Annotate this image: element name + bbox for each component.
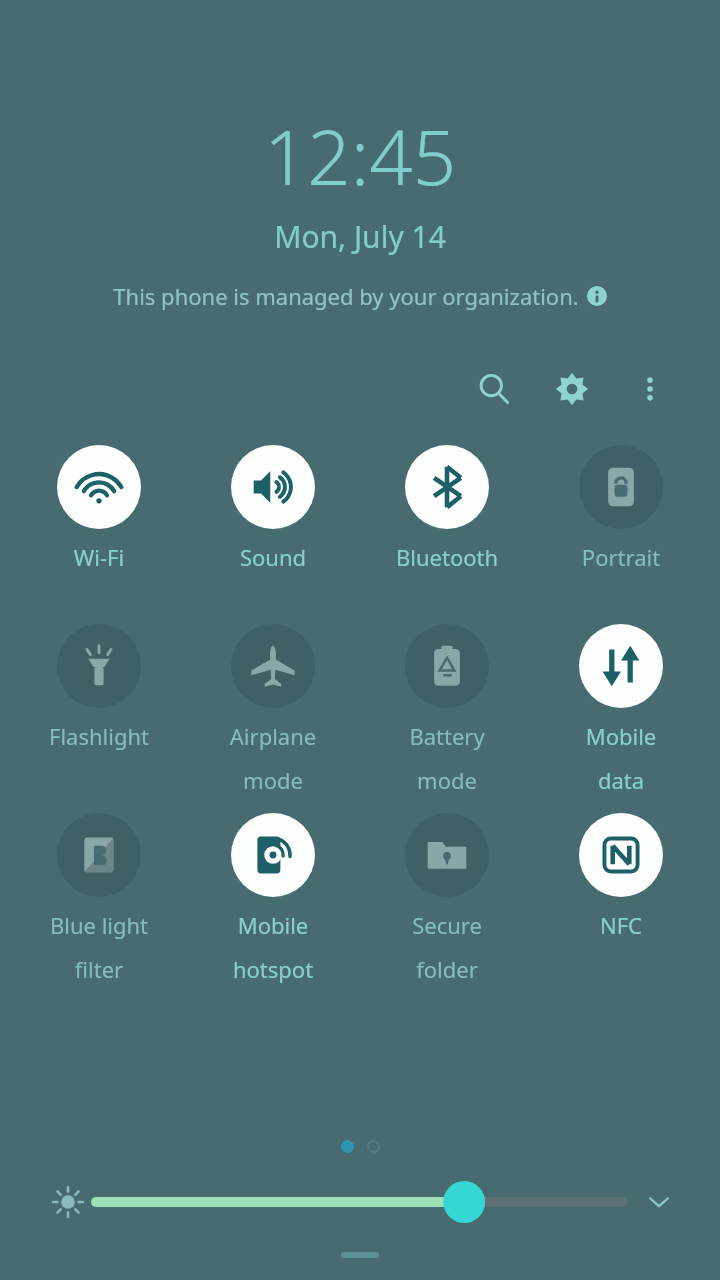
staticText: Battery mode (360, 721, 534, 795)
button[interactable]: Blue light filter (12, 809, 186, 988)
button[interactable]: Secure folder (360, 809, 534, 988)
button[interactable]: Flashlight (12, 620, 186, 755)
button[interactable]: Battery mode (360, 620, 534, 799)
button[interactable]: Expand (638, 1181, 680, 1223)
staticText: Wi-Fi (12, 542, 186, 572)
button[interactable]: Brightness slider (96, 1184, 622, 1220)
staticText: Flashlight (12, 721, 186, 751)
staticText: Blue light filter (12, 910, 186, 984)
staticText: 12:45 (0, 104, 720, 208)
button[interactable]: Settings (548, 365, 596, 413)
staticText: Portrait (534, 542, 708, 572)
staticText: Secure folder (360, 910, 534, 984)
button[interactable]: NFC (534, 809, 708, 944)
staticText: Bluetooth (360, 542, 534, 572)
button[interactable]: Mobile hotspot (186, 809, 360, 988)
button[interactable]: Mobile data (534, 620, 708, 799)
button[interactable]: Wi-Fi (12, 441, 186, 576)
button[interactable]: Airplane mode (186, 620, 360, 799)
staticText: Mon, July 14 (0, 216, 720, 257)
staticText: Airplane mode (186, 721, 360, 795)
button[interactable]: This phone is managed by your organizati… (0, 277, 720, 315)
button[interactable]: Sound (186, 441, 360, 576)
staticText: NFC (534, 910, 708, 940)
button[interactable]: Bluetooth (360, 441, 534, 576)
button[interactable]: More options (626, 365, 674, 413)
staticText: Mobile data (534, 721, 708, 795)
staticText: Mobile hotspot (186, 910, 360, 984)
staticText: Sound (186, 542, 360, 572)
button[interactable]: Search (470, 365, 518, 413)
button[interactable]: Portrait (534, 441, 708, 576)
button[interactable]: Brightness (46, 1180, 90, 1224)
staticText: This phone is managed by your organizati… (113, 281, 579, 311)
